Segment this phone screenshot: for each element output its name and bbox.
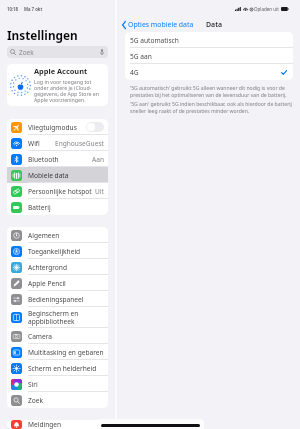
staticText: Beginscherm en appbibliotheek — [28, 309, 104, 326]
button[interactable]: Zoek — [7, 392, 108, 408]
staticText: '5G aan' gebruikt 5G indien beschikbaar,… — [130, 101, 295, 114]
staticText: Log in voor toegang tot onder andere je … — [34, 78, 107, 104]
staticText: '5G automatisch' gebruikt 5G alleen wann… — [130, 85, 295, 98]
button[interactable]: Toegankelijkheid — [7, 243, 108, 259]
staticText: Scherm en helderheid — [28, 364, 104, 373]
staticText: Algemeen — [28, 231, 104, 240]
staticText: Batterij — [28, 203, 104, 212]
button[interactable]: Wifi — [7, 135, 108, 151]
button[interactable]: 5G automatisch — [125, 32, 293, 48]
button[interactable]: Apple Pencil — [7, 275, 108, 291]
staticText: Zoek — [19, 48, 34, 57]
staticText: Apple Pencil — [28, 279, 104, 288]
button[interactable]: Vliegtuigmodus — [7, 119, 108, 135]
staticText: Zoek — [28, 396, 104, 405]
staticText: EnghouseGuest — [55, 139, 104, 148]
button[interactable]: Bedieningspaneel — [7, 291, 108, 307]
button[interactable]: Beginscherm en appbibliotheek — [7, 307, 108, 328]
button[interactable]: 4G — [125, 64, 293, 80]
button[interactable]: Apple Account — [7, 64, 108, 106]
button[interactable]: Meldingen — [7, 420, 108, 429]
staticText: Opties mobiele data — [128, 20, 194, 29]
staticText: Bluetooth — [28, 155, 92, 164]
button[interactable]: Zoek — [7, 46, 108, 58]
staticText: Siri — [28, 380, 104, 389]
staticText: 4G — [130, 68, 139, 77]
button[interactable]: Achtergrond — [7, 259, 108, 275]
button[interactable]: Bluetooth — [7, 151, 108, 167]
staticText: Mobiele data — [28, 171, 104, 180]
staticText: Data — [206, 20, 223, 30]
staticText: Aan — [92, 155, 104, 164]
button[interactable]: Algemeen — [7, 227, 108, 243]
staticText: Opladen uit — [254, 6, 279, 12]
staticText: 5G aan — [130, 52, 152, 61]
staticText: 5G automatisch — [130, 36, 179, 45]
button[interactable]: Siri — [7, 376, 108, 392]
button[interactable]: 5G aan — [125, 48, 293, 64]
button[interactable]: Persoonlijke hotspot — [7, 183, 108, 199]
staticText: Toegankelijkheid — [28, 247, 104, 256]
button[interactable]: Mobiele data — [7, 167, 108, 183]
staticText: Achtergrond — [28, 263, 104, 272]
button[interactable]: Multitasking en gebaren — [7, 344, 108, 360]
button[interactable]: Batterij — [7, 199, 108, 215]
button[interactable]: Scherm en helderheid — [7, 360, 108, 376]
staticText: Vliegtuigmodus — [28, 123, 86, 132]
button[interactable]: Opties mobiele data — [121, 20, 195, 29]
staticText: Ma 7 okt — [24, 6, 43, 12]
staticText: Camera — [28, 332, 104, 341]
button[interactable]: Camera — [7, 328, 108, 344]
staticText: Wifi — [28, 139, 55, 148]
staticText: Apple Account — [34, 66, 88, 76]
staticText: Persoonlijke hotspot — [28, 187, 95, 196]
staticText: Uit — [95, 187, 104, 196]
staticText: Bedieningspaneel — [28, 295, 104, 304]
staticText: Instellingen — [7, 27, 78, 43]
staticText: Multitasking en gebaren — [28, 348, 104, 357]
staticText: 10:18 — [7, 6, 19, 12]
staticText: Meldingen — [28, 420, 104, 429]
